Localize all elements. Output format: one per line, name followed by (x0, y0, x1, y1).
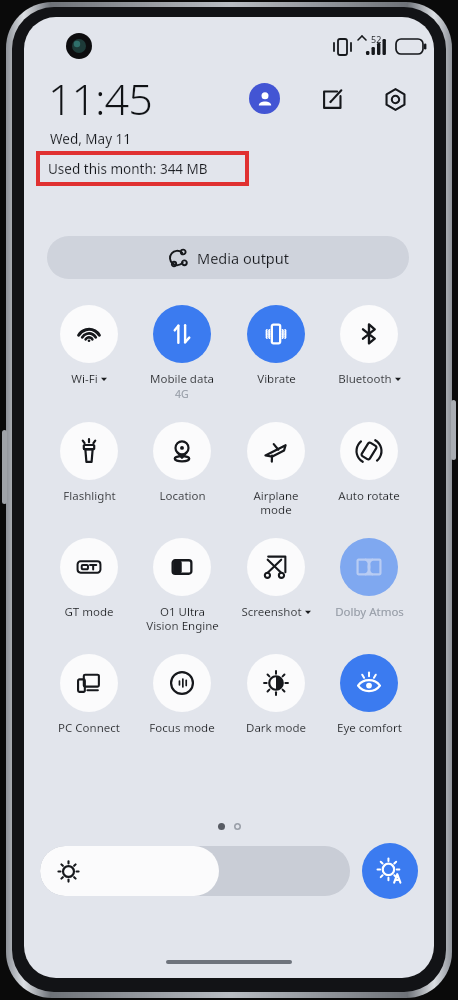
button[interactable]: Flashlight (50, 422, 128, 504)
button[interactable]: Auto brightness (362, 843, 418, 899)
button[interactable]: Screenshot (237, 538, 315, 620)
button[interactable]: Wi-Fi (50, 305, 128, 387)
button[interactable]: PC Connect (50, 654, 128, 736)
button[interactable]: Focus mode (143, 654, 221, 736)
staticText: Wi-Fi (71, 371, 98, 387)
staticText: Dark mode (246, 720, 306, 736)
button[interactable]: Airplane mode (237, 422, 315, 517)
staticText: Used this month: 344 MB (48, 160, 208, 178)
staticText: Wed, May 11 (50, 130, 131, 148)
staticText: 4G (175, 387, 189, 401)
staticText: Screenshot (241, 604, 302, 620)
button[interactable]: Vibrate (237, 305, 315, 387)
staticText: Auto rotate (338, 488, 400, 504)
staticText: Media output (197, 248, 289, 268)
staticText: O1 Ultra Vision Engine (146, 604, 219, 633)
staticText: Bluetooth (338, 371, 392, 387)
staticText: Dolby Atmos (335, 604, 404, 620)
button[interactable]: Auto rotate (330, 422, 408, 504)
button[interactable]: Dolby Atmos (330, 538, 408, 620)
button[interactable]: O1 Ultra Vision Engine (143, 538, 221, 633)
button[interactable]: Bluetooth (330, 305, 408, 387)
button[interactable]: Eye comfort (330, 654, 408, 736)
staticText: Location (159, 488, 206, 504)
button[interactable]: Media output (47, 236, 409, 279)
staticText: Eye comfort (337, 720, 402, 736)
staticText: 52 (371, 33, 382, 45)
staticText: Airplane mode (253, 488, 299, 517)
staticText: Flashlight (63, 488, 116, 504)
button[interactable]: Settings (378, 82, 412, 116)
staticText: 11:45 (48, 69, 152, 128)
button[interactable]: Location (143, 422, 221, 504)
staticText: Mobile data (150, 371, 214, 387)
staticText: Focus mode (149, 720, 215, 736)
button[interactable]: Mobile data (143, 305, 221, 401)
button[interactable]: Account (249, 83, 280, 114)
button[interactable]: Brightness (40, 846, 350, 896)
staticText: GT mode (64, 604, 114, 620)
staticText: Vibrate (257, 371, 296, 387)
button[interactable]: Dark mode (237, 654, 315, 736)
staticText: PC Connect (58, 720, 120, 736)
button[interactable]: Edit tiles (315, 82, 349, 116)
button[interactable]: GT mode (50, 538, 128, 620)
